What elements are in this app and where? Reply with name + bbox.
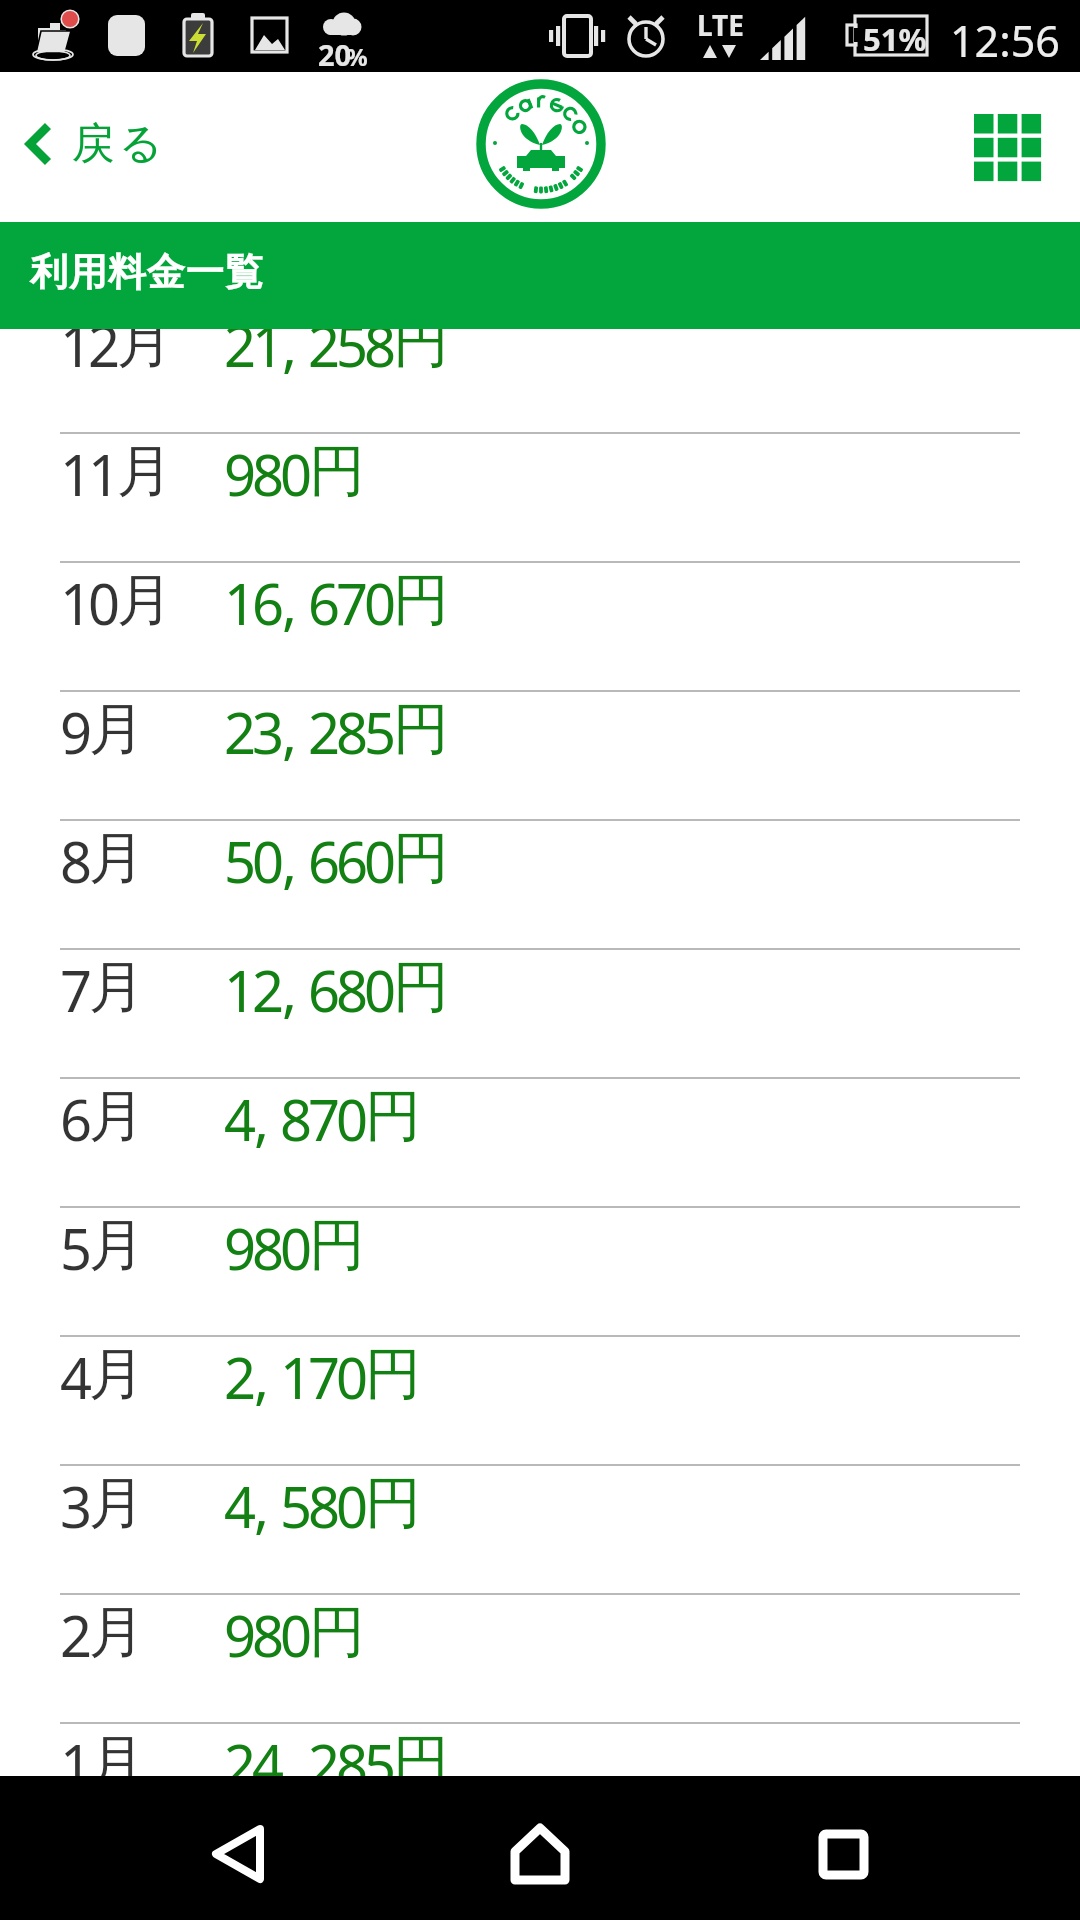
button[interactable]: 1 xyxy=(0,561,1080,690)
staticText: 3 xyxy=(60,1468,88,1544)
staticText: 7 xyxy=(60,952,88,1028)
staticText: 円 xyxy=(393,952,441,1023)
staticText: 0 xyxy=(280,1210,308,1286)
staticText: 4 xyxy=(60,1339,88,1415)
button[interactable]: Menu xyxy=(950,90,1080,205)
staticText: 7 xyxy=(308,1081,336,1157)
staticText: , xyxy=(254,1339,270,1415)
staticText: 0 xyxy=(336,1468,364,1544)
button[interactable]: 7 xyxy=(0,948,1080,1077)
staticText: 月 xyxy=(117,565,165,636)
staticText: , xyxy=(282,694,298,770)
staticText: 月 xyxy=(89,694,137,765)
staticText: 月 xyxy=(89,823,137,894)
staticText: 8 xyxy=(280,1081,308,1157)
staticText: 2 xyxy=(308,329,336,383)
staticText: , xyxy=(282,823,298,899)
staticText: , xyxy=(282,329,298,383)
staticText: 月 xyxy=(89,1726,137,1776)
staticText: 8 xyxy=(60,823,88,899)
staticText: 8 xyxy=(308,1468,336,1544)
button[interactable]: 3 xyxy=(0,1464,1080,1593)
staticText: , xyxy=(282,1726,298,1776)
staticText: 2 xyxy=(88,329,116,383)
staticText: 0 xyxy=(88,565,116,641)
button[interactable]: 8 xyxy=(0,819,1080,948)
staticText: 1 xyxy=(224,565,252,641)
staticText: 2 xyxy=(224,329,252,383)
staticText: 6 xyxy=(60,1081,88,1157)
staticText: 4 xyxy=(224,1081,252,1157)
staticText: 円 xyxy=(393,694,441,765)
staticText: 円 xyxy=(393,1726,441,1776)
staticText: 0 xyxy=(252,823,280,899)
button[interactable]: 1 xyxy=(0,329,1080,432)
button[interactable]: 2 xyxy=(0,1593,1080,1722)
button[interactable]: 1 xyxy=(0,432,1080,561)
staticText: 月 xyxy=(89,952,137,1023)
staticText: 6 xyxy=(308,823,336,899)
staticText: 月 xyxy=(117,329,165,378)
staticText: 円 xyxy=(365,1468,413,1539)
staticText: 0 xyxy=(364,565,392,641)
staticText: 51% xyxy=(863,18,927,60)
staticText: 8 xyxy=(252,1597,280,1673)
staticText: 円 xyxy=(309,1597,357,1668)
staticText: 1 xyxy=(280,1339,308,1415)
button[interactable]: 5 xyxy=(0,1206,1080,1335)
staticText: 5 xyxy=(280,1468,308,1544)
staticText: 利用料金一覧 xyxy=(30,248,264,296)
staticText: 円 xyxy=(365,1081,413,1152)
button[interactable]: Recents xyxy=(778,1789,908,1919)
staticText: 8 xyxy=(336,1726,364,1776)
staticText: 戻る xyxy=(72,117,167,171)
staticText: 円 xyxy=(309,1210,357,1281)
button[interactable]: 戻る xyxy=(0,101,185,187)
staticText: 3 xyxy=(252,694,280,770)
staticText: 2 xyxy=(224,1726,252,1776)
staticText: LTE xyxy=(697,6,744,44)
staticText: 1 xyxy=(60,329,88,383)
staticText: , xyxy=(282,565,298,641)
staticText: 9 xyxy=(224,1210,252,1286)
button[interactable]: Home xyxy=(475,1789,605,1919)
staticText: 円 xyxy=(393,565,441,636)
button[interactable]: 4 xyxy=(0,1335,1080,1464)
staticText: 6 xyxy=(308,952,336,1028)
staticText: 4 xyxy=(252,1726,280,1776)
staticText: 1 xyxy=(60,565,88,641)
staticText: 9 xyxy=(224,1597,252,1673)
staticText: , xyxy=(254,1081,270,1157)
staticText: 6 xyxy=(308,565,336,641)
staticText: 8 xyxy=(336,694,364,770)
staticText: 7 xyxy=(308,1339,336,1415)
staticText: , xyxy=(282,952,298,1028)
staticText: 5 xyxy=(364,694,392,770)
button[interactable]: 6 xyxy=(0,1077,1080,1206)
button[interactable]: Back xyxy=(173,1789,303,1919)
staticText: 円 xyxy=(309,436,357,507)
staticText: 月 xyxy=(117,436,165,507)
staticText: 0 xyxy=(336,1339,364,1415)
staticText: 7 xyxy=(336,565,364,641)
staticText: 月 xyxy=(89,1210,137,1281)
staticText: 1 xyxy=(60,1726,88,1776)
button[interactable]: 9 xyxy=(0,690,1080,819)
staticText: 6 xyxy=(336,823,364,899)
staticText: 2 xyxy=(252,952,280,1028)
staticText: 0 xyxy=(280,436,308,512)
staticText: 9 xyxy=(224,436,252,512)
staticText: 5 xyxy=(336,329,364,383)
button[interactable]: 1 xyxy=(0,1722,1080,1776)
staticText: 0 xyxy=(364,823,392,899)
staticText: 2 xyxy=(224,694,252,770)
staticText: 円 xyxy=(393,329,441,378)
staticText: 5 xyxy=(364,1726,392,1776)
staticText: 9 xyxy=(60,694,88,770)
staticText: 4 xyxy=(224,1468,252,1544)
staticText: 6 xyxy=(252,565,280,641)
staticText: , xyxy=(254,1468,270,1544)
staticText: 12:56 xyxy=(950,11,1060,70)
staticText: 2 xyxy=(308,694,336,770)
staticText: 8 xyxy=(252,436,280,512)
